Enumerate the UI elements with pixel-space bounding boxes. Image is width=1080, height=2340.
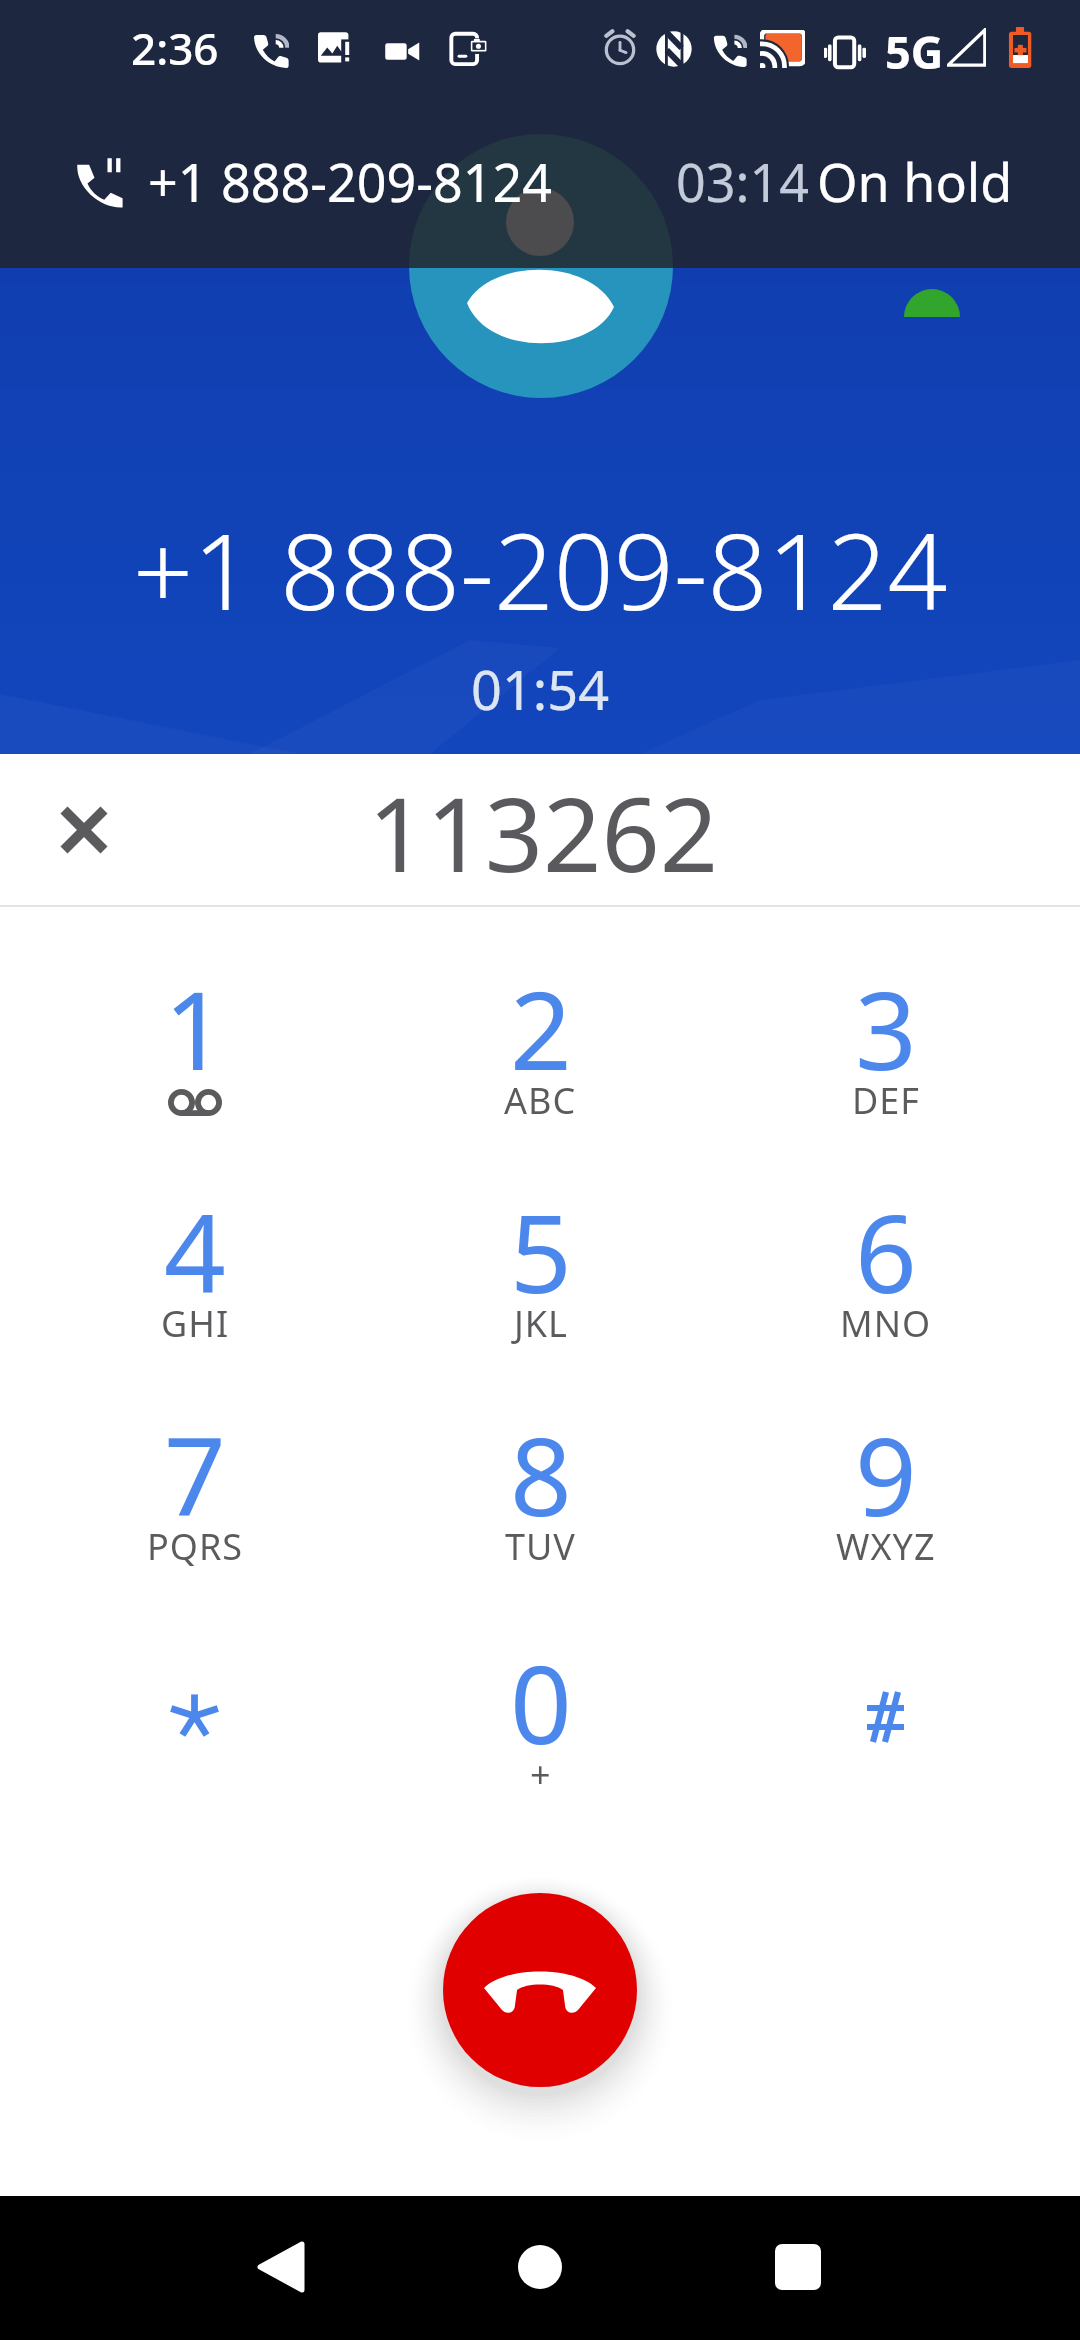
button[interactable]: End call — [443, 1893, 637, 2087]
button[interactable]: Back — [220, 2207, 340, 2327]
staticText: 7 — [164, 1401, 226, 1548]
staticText: +1 888-209-8124 — [133, 498, 948, 641]
staticText: 4 — [164, 1178, 226, 1325]
staticText: 8 — [510, 1401, 572, 1548]
button[interactable]: 6 — [713, 1178, 1058, 1401]
button[interactable] — [22, 1624, 368, 1847]
staticText: 2 — [510, 955, 572, 1102]
staticText: 113262 — [368, 763, 719, 902]
staticText: On hold — [817, 146, 1013, 217]
button[interactable]: Close dialpad — [9, 755, 159, 905]
button[interactable]: 2 — [368, 955, 713, 1178]
staticText: DEF — [852, 1076, 920, 1125]
button[interactable]: 7 — [22, 1401, 368, 1624]
staticText: 9 — [855, 1401, 917, 1548]
staticText: 0 — [510, 1629, 572, 1776]
staticText: 6 — [855, 1178, 917, 1325]
staticText: 5G — [885, 21, 944, 82]
button[interactable]: 1 — [22, 955, 368, 1178]
button[interactable]: 5 — [368, 1178, 713, 1401]
staticText: PQRS — [147, 1522, 244, 1571]
button[interactable]: Home — [480, 2207, 600, 2327]
staticText: 1 — [164, 955, 226, 1102]
staticText: TUV — [505, 1522, 576, 1571]
staticText: 01:54 — [471, 652, 610, 726]
button[interactable]: Recents — [738, 2207, 858, 2327]
staticText: + — [530, 1750, 552, 1799]
button[interactable]: 8 — [368, 1401, 713, 1624]
button[interactable]: 0 — [368, 1624, 713, 1847]
staticText: ABC — [504, 1076, 577, 1125]
staticText: 03:14 — [676, 146, 809, 217]
staticText: MNO — [840, 1299, 932, 1348]
button[interactable]: 4 — [22, 1178, 368, 1401]
staticText: 3 — [855, 955, 917, 1102]
button[interactable]: 9 — [713, 1401, 1058, 1624]
staticText: 2:36 — [131, 18, 219, 78]
button[interactable] — [713, 1624, 1058, 1847]
staticText: GHI — [161, 1299, 230, 1348]
staticText: JKL — [514, 1299, 568, 1348]
button[interactable]: 3 — [713, 955, 1058, 1178]
staticText: +1 888-209-8124 — [148, 146, 552, 217]
staticText: WXYZ — [836, 1522, 936, 1571]
staticText: 5 — [510, 1178, 572, 1325]
